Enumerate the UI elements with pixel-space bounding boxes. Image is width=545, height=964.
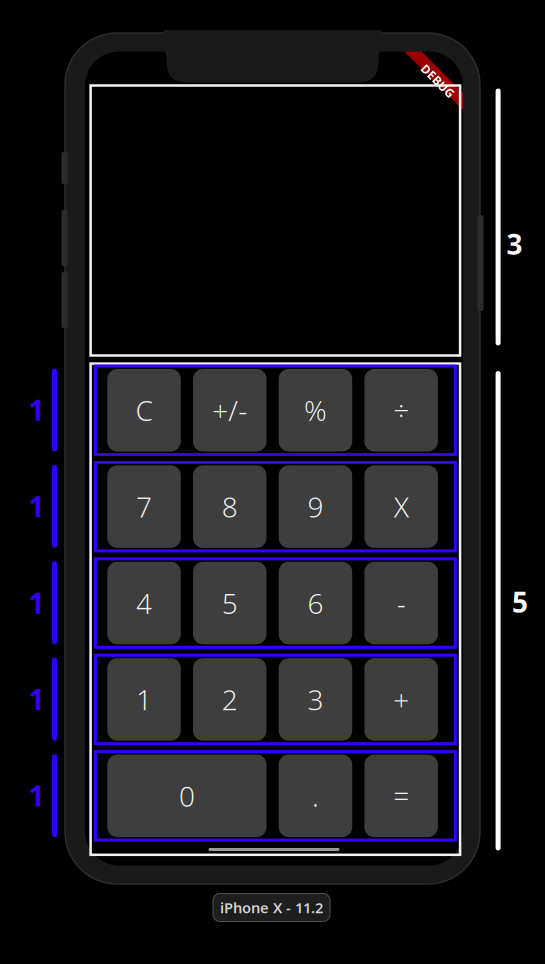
button[interactable]: 3 [279, 658, 352, 741]
button[interactable]: iPhone X - 11.2 [213, 893, 330, 921]
staticText: 1 [136, 681, 152, 718]
button[interactable]: X [364, 465, 438, 548]
staticText: + [393, 681, 409, 718]
staticText: 7 [136, 488, 152, 525]
staticText: X [394, 488, 409, 525]
staticText: 3 [307, 681, 323, 718]
staticText: 1 [28, 777, 44, 814]
staticText: ÷ [393, 392, 409, 429]
button[interactable]: +/- [193, 369, 266, 451]
staticText: DEBUG [417, 73, 459, 89]
staticText: 6 [307, 584, 323, 622]
staticText: 5 [222, 584, 238, 622]
staticText: 1 [28, 391, 44, 429]
staticText: 1 [28, 584, 44, 621]
button[interactable]: + [364, 658, 438, 741]
button[interactable]: . [279, 755, 352, 837]
button[interactable]: ÷ [364, 369, 438, 451]
staticText: 2 [222, 681, 238, 718]
staticText: 4 [136, 584, 152, 622]
staticText: 1 [28, 488, 44, 525]
button[interactable]: - [364, 562, 438, 644]
staticText: = [393, 777, 409, 814]
staticText: 1 [28, 681, 44, 718]
button[interactable]: 6 [279, 562, 352, 644]
staticText: 3 [506, 225, 522, 263]
staticText: % [304, 392, 327, 429]
button[interactable]: C [107, 369, 181, 451]
staticText: 5 [512, 583, 528, 621]
staticText: 0 [179, 777, 195, 814]
button[interactable]: 9 [279, 465, 352, 548]
button[interactable]: 5 [193, 562, 266, 644]
staticText: C [136, 392, 153, 429]
button[interactable]: 1 [107, 658, 181, 741]
button[interactable]: % [279, 369, 352, 451]
staticText: 8 [222, 488, 238, 525]
staticText: +/- [212, 392, 247, 429]
button[interactable]: 7 [107, 465, 181, 548]
staticText: 9 [307, 488, 323, 525]
button[interactable]: 8 [193, 465, 266, 548]
staticText: iPhone X - 11.2 [220, 898, 323, 917]
button[interactable]: 2 [193, 658, 266, 741]
staticText: - [397, 584, 406, 622]
button[interactable]: 0 [107, 755, 266, 837]
button[interactable]: = [364, 755, 438, 837]
staticText: . [312, 777, 319, 814]
button[interactable]: 4 [107, 562, 181, 644]
